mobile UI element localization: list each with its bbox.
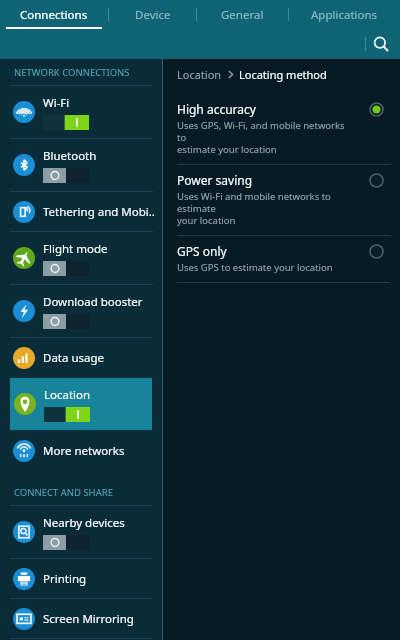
staticText: Wi-Fi [43, 95, 70, 111]
button[interactable] [43, 535, 89, 550]
button[interactable]: Power saving [163, 165, 400, 235]
button[interactable]: Location [177, 67, 327, 82]
button[interactable]: Connections [0, 0, 108, 29]
staticText: Device [135, 7, 171, 23]
button[interactable] [43, 115, 89, 130]
staticText: Tethering and Mobi.. [43, 204, 155, 220]
staticText: High accuracy [177, 101, 256, 117]
staticText: More networks [43, 443, 125, 459]
staticText: Location [44, 387, 91, 403]
other: Power saving [361, 173, 391, 195]
staticText: Download booster [43, 294, 143, 310]
button[interactable]: Nearby devices [0, 506, 162, 558]
staticText: Flight mode [43, 241, 108, 257]
button[interactable]: Wi-Fi [0, 86, 162, 138]
staticText: Applications [311, 7, 378, 23]
button[interactable]: General [197, 0, 288, 29]
button[interactable]: More networks [0, 431, 162, 470]
staticText: Nearby devices [43, 515, 125, 531]
button[interactable]: Applications [289, 0, 400, 29]
staticText: Data usage [43, 350, 105, 366]
staticText: Bluetooth [43, 148, 97, 164]
button[interactable] [44, 407, 90, 422]
button[interactable]: Location [10, 378, 152, 430]
staticText: NETWORK CONNECTIONS [14, 66, 130, 79]
button[interactable]: Flight mode [0, 232, 162, 284]
staticText: Uses GPS to estimate your location [177, 261, 333, 274]
staticText: GPS only [177, 243, 227, 259]
button[interactable]: Tethering and Mobi.. [0, 192, 162, 231]
other: High accuracy [361, 102, 391, 124]
button[interactable]: Bluetooth [0, 139, 162, 191]
button[interactable]: Search [366, 29, 396, 59]
staticText: Location [177, 67, 222, 82]
staticText: Screen Mirroring [43, 611, 134, 627]
button[interactable]: Download booster [0, 285, 162, 337]
button[interactable]: Screen Mirroring [0, 599, 162, 638]
staticText: Uses Wi-Fi and mobile networks to estima… [177, 190, 355, 227]
button[interactable] [43, 261, 89, 276]
button[interactable]: GPS only [163, 236, 400, 282]
button[interactable]: Printing [0, 559, 162, 598]
staticText: Printing [43, 571, 87, 587]
staticText: Connections [20, 7, 88, 23]
staticText: General [221, 7, 264, 23]
button[interactable]: High accuracy [163, 94, 400, 164]
button[interactable]: Device [109, 0, 196, 29]
staticText: Uses GPS, Wi-Fi, and mobile networks to … [177, 119, 355, 156]
staticText: CONNECT AND SHARE [14, 486, 113, 499]
other: GPS only [361, 244, 391, 266]
staticText: Locating method [239, 67, 327, 82]
button[interactable] [43, 314, 89, 329]
staticText: Power saving [177, 172, 253, 188]
button[interactable] [43, 168, 89, 183]
button[interactable]: Data usage [0, 338, 162, 377]
